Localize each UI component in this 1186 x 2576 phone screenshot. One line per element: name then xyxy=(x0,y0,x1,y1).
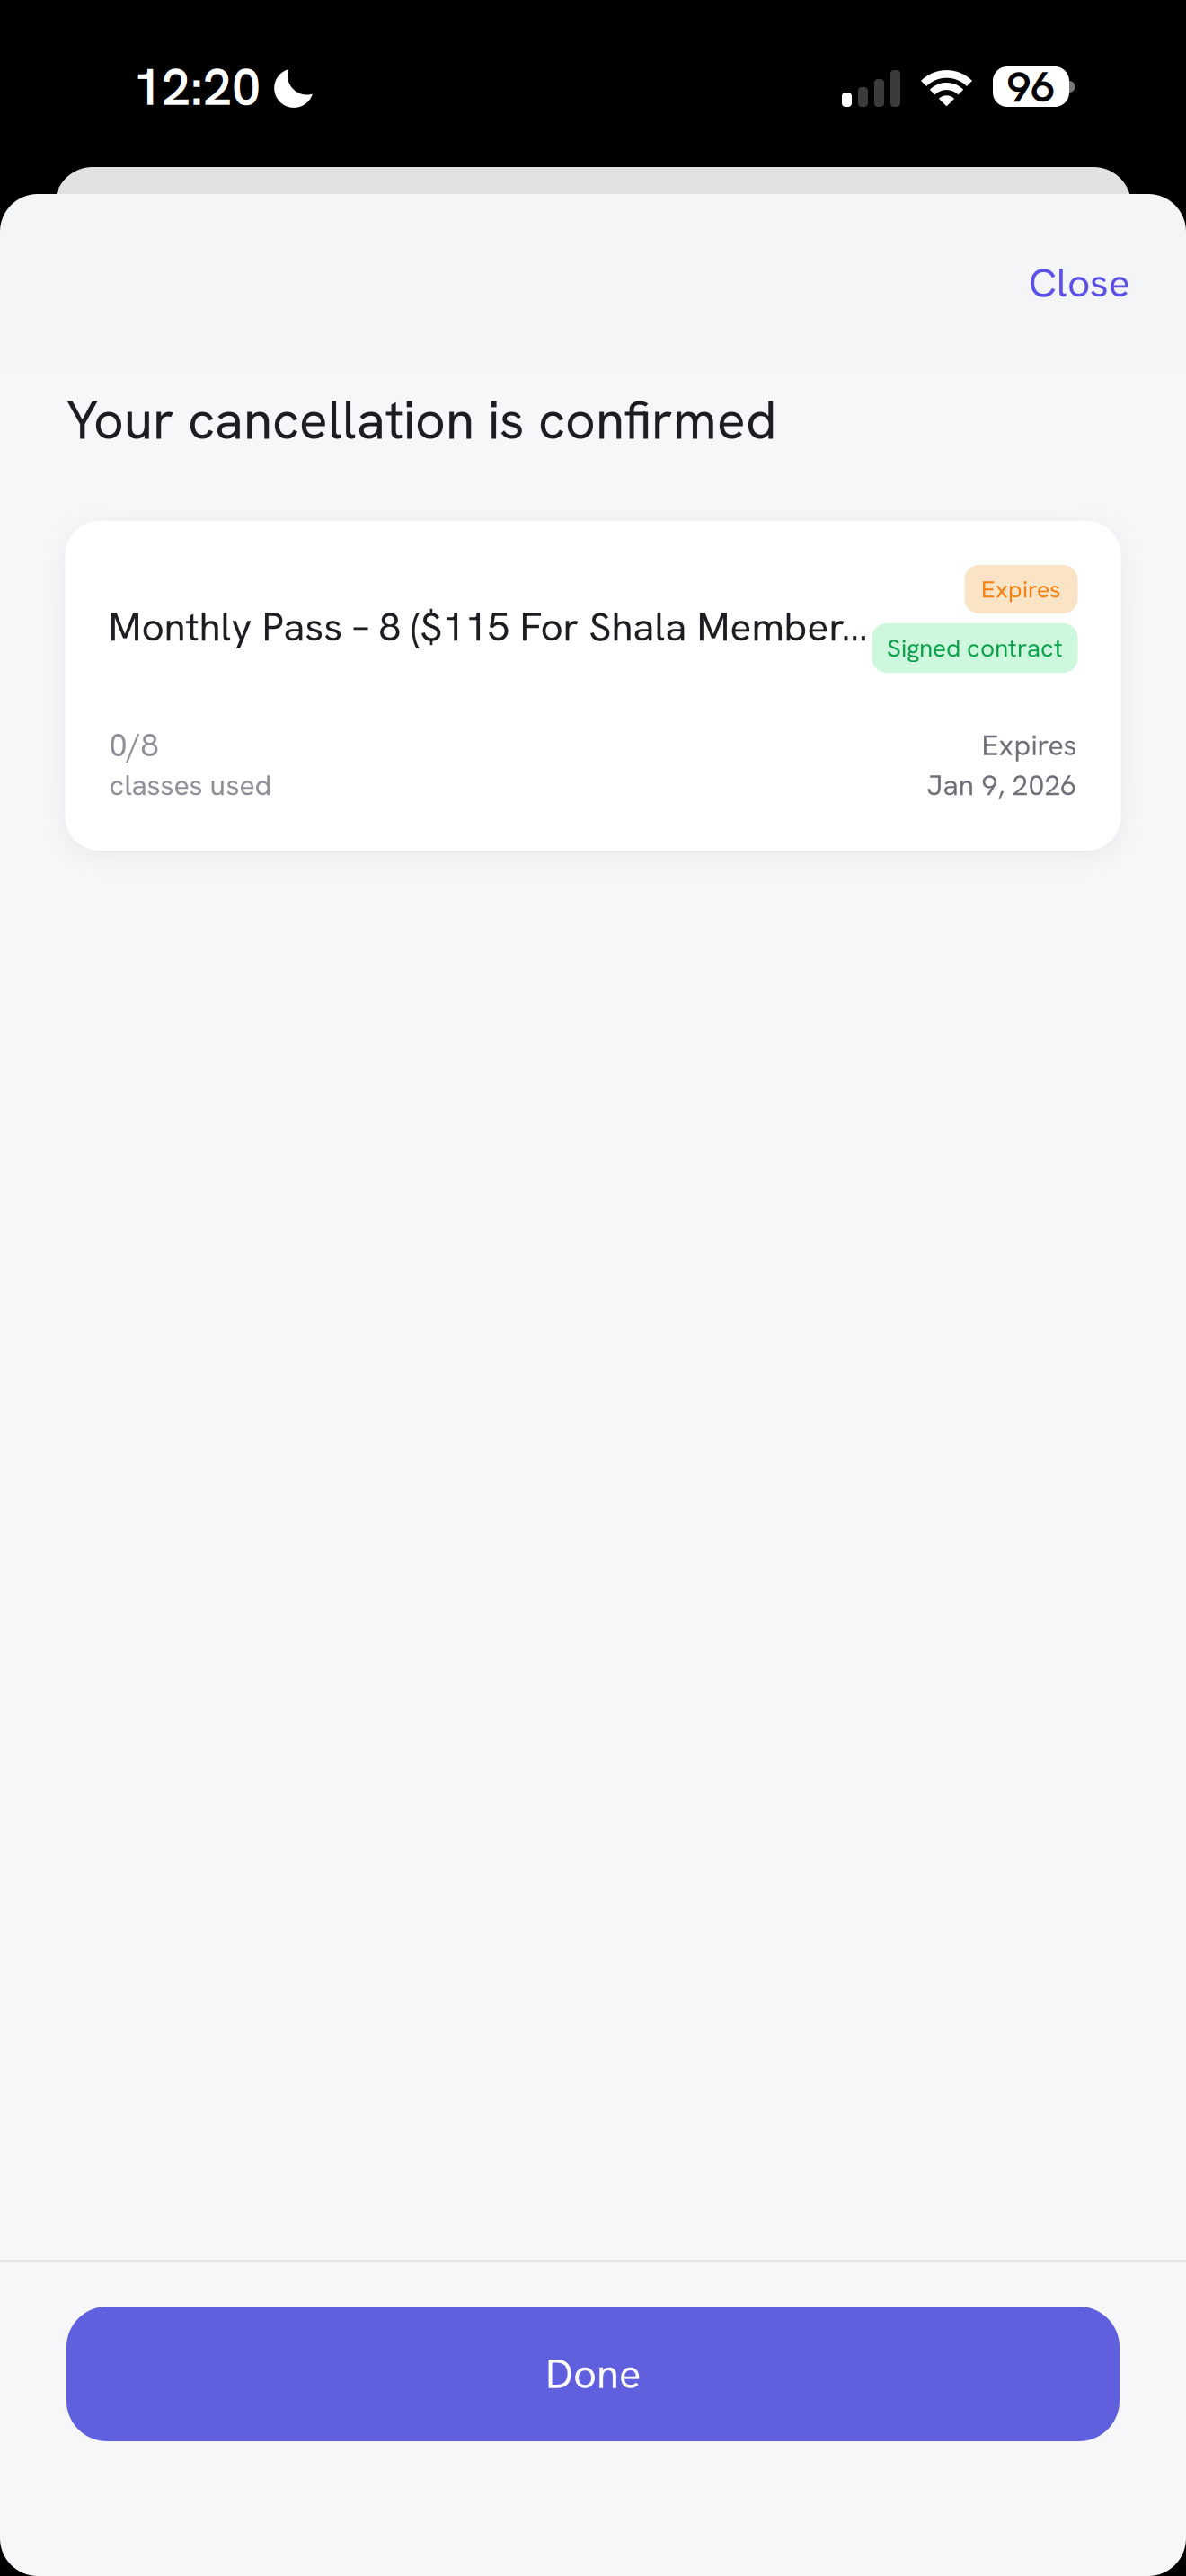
staticText: 96 xyxy=(1007,59,1055,115)
button[interactable]: Done xyxy=(66,2307,1120,2441)
staticText: 0/8 xyxy=(109,724,159,766)
staticText: Signed contract xyxy=(887,632,1063,664)
staticText: Close xyxy=(1029,257,1130,309)
staticText: Monthly Pass – 8 ($115 For Shala Member… xyxy=(108,601,867,653)
staticText: Your cancellation is confirmed xyxy=(66,386,776,455)
button[interactable]: Close xyxy=(1002,228,1157,337)
staticText: Expires xyxy=(981,574,1061,605)
staticText: 12:20 xyxy=(133,53,261,120)
staticText: Expires xyxy=(982,726,1077,764)
staticText: classes used xyxy=(109,766,272,804)
staticText: Done xyxy=(545,2347,641,2400)
staticText: Jan 9, 2026 xyxy=(927,766,1077,804)
